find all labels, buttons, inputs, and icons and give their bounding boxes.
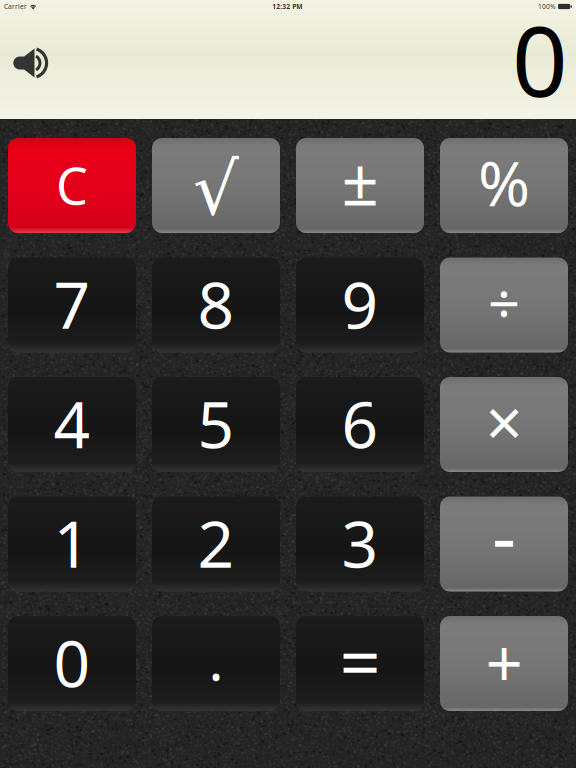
staticText: ×	[485, 378, 522, 465]
staticText: 0	[53, 620, 90, 705]
button[interactable]: 5	[152, 377, 280, 472]
button[interactable]: 1	[8, 496, 136, 591]
button[interactable]: Clear	[8, 138, 136, 233]
button[interactable]: 7	[8, 257, 136, 352]
staticText: =	[339, 613, 380, 708]
staticText: 12:32 PM	[272, 2, 302, 11]
staticText: 7	[53, 261, 90, 346]
button[interactable]: 8	[152, 257, 280, 352]
staticText: 6	[341, 381, 378, 466]
button[interactable]: Plus	[440, 616, 568, 711]
staticText: 2	[197, 500, 234, 585]
button[interactable]: 3	[296, 496, 424, 591]
button[interactable]: Minus	[440, 496, 568, 591]
button[interactable]: Equals	[296, 616, 424, 711]
staticText: 5	[197, 381, 234, 466]
button[interactable]: Square root	[152, 138, 280, 233]
button[interactable]: 4	[8, 377, 136, 472]
button[interactable]: Plus minus	[296, 138, 424, 233]
button[interactable]: Decimal point	[152, 616, 280, 711]
button[interactable]: 0	[8, 616, 136, 711]
staticText: ÷	[488, 265, 520, 340]
staticText: 3	[341, 500, 378, 585]
staticText: -	[492, 485, 516, 584]
staticText: C	[56, 151, 88, 219]
button[interactable]: 9	[296, 257, 424, 352]
staticText: ±	[341, 137, 378, 224]
staticText: Carrier	[4, 2, 27, 11]
staticText: +	[485, 618, 522, 705]
button[interactable]: 6	[296, 377, 424, 472]
staticText: 9	[341, 261, 378, 346]
staticText: 1	[53, 500, 90, 585]
button[interactable]: Divide	[440, 257, 568, 352]
staticText: 8	[197, 261, 234, 346]
button[interactable]: Percent	[440, 138, 568, 233]
button[interactable]: 2	[152, 496, 280, 591]
button[interactable]: Sound	[0, 44, 55, 81]
staticText: %	[478, 140, 530, 224]
staticText: 0	[512, 0, 568, 124]
staticText: 4	[53, 381, 90, 466]
staticText: .	[208, 622, 223, 696]
button[interactable]: Multiply	[440, 377, 568, 472]
staticText: 100%	[538, 2, 556, 11]
staticText: √	[193, 148, 239, 230]
